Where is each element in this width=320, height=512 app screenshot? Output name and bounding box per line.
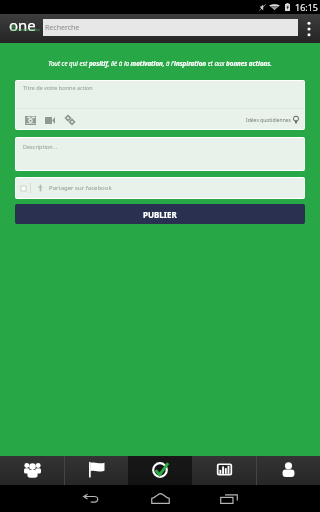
staticText: Tout ce qui est positif, lié à la motiva… [48, 59, 272, 67]
staticText: Recherche [45, 23, 80, 33]
staticText: 16:15 [295, 1, 319, 13]
button[interactable]: PUBLIER [15, 204, 305, 224]
staticText: Idées quotidiennes [246, 117, 291, 124]
button[interactable]: Add link [63, 113, 77, 127]
staticText: Titre de votre bonne action [23, 84, 93, 91]
staticText: PUBLIER [143, 209, 177, 220]
staticText: pour un monde meilleur [10, 28, 40, 32]
staticText: one [9, 15, 36, 35]
button[interactable]: Recent apps [207, 485, 251, 512]
button[interactable]: Partager sur facebook [16, 178, 304, 198]
button[interactable]: Description .. [16, 138, 304, 170]
button[interactable]: Challenges [64, 456, 128, 485]
button[interactable]: Home [138, 485, 182, 512]
button[interactable]: one home [0, 14, 42, 43]
button[interactable]: Recherche [43, 19, 298, 36]
button[interactable]: Back [69, 485, 113, 512]
button[interactable]: Titre de votre bonne action [16, 81, 304, 108]
staticText: Partager sur facebook [49, 184, 112, 192]
button[interactable]: Statistics [192, 456, 256, 485]
staticText: Description .. [23, 143, 57, 150]
button[interactable]: More options [298, 14, 320, 43]
button[interactable]: Friends [0, 456, 64, 485]
button[interactable]: Actions [128, 456, 192, 485]
button[interactable]: Add photo [23, 113, 37, 127]
button[interactable]: Idées quotidiennes [246, 116, 300, 124]
button[interactable]: Profile [256, 456, 320, 485]
button[interactable]: Add video [43, 113, 57, 127]
